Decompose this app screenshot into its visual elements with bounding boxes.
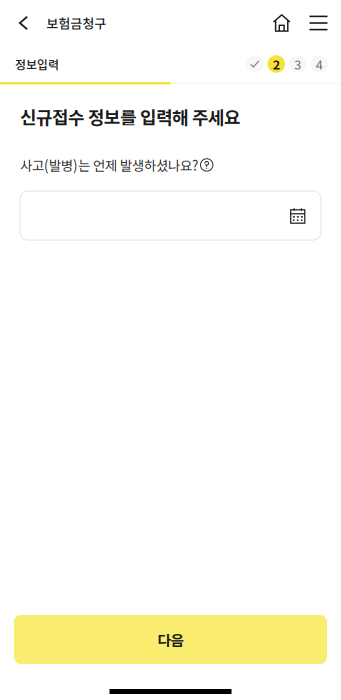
staticText: 3 (294, 55, 301, 73)
button[interactable]: 2단계 (266, 54, 286, 74)
button[interactable]: 완료 (245, 54, 264, 74)
staticText: 사고(발병)는 언제 발생하셨나요? (20, 155, 198, 175)
button[interactable]: 날짜 선택 (20, 191, 321, 240)
staticText: 신규접수 정보를 입력해 주세요 (20, 103, 240, 129)
button[interactable]: 도움말 (198, 157, 213, 173)
button[interactable]: 4단계 (309, 54, 329, 74)
button[interactable]: 3단계 (288, 54, 307, 74)
button[interactable]: 뒤로 (12, 0, 34, 46)
button[interactable]: 메뉴 (302, 0, 334, 46)
staticText: 보험금청구 (46, 14, 106, 32)
button[interactable]: 다음 (14, 615, 327, 664)
staticText: 다음 (157, 629, 183, 650)
button[interactable]: 정보입력 (15, 46, 59, 82)
button[interactable]: 홈 (261, 0, 302, 46)
staticText: 4 (316, 55, 323, 73)
staticText: 정보입력 (15, 55, 59, 73)
staticText: 2 (273, 55, 280, 73)
